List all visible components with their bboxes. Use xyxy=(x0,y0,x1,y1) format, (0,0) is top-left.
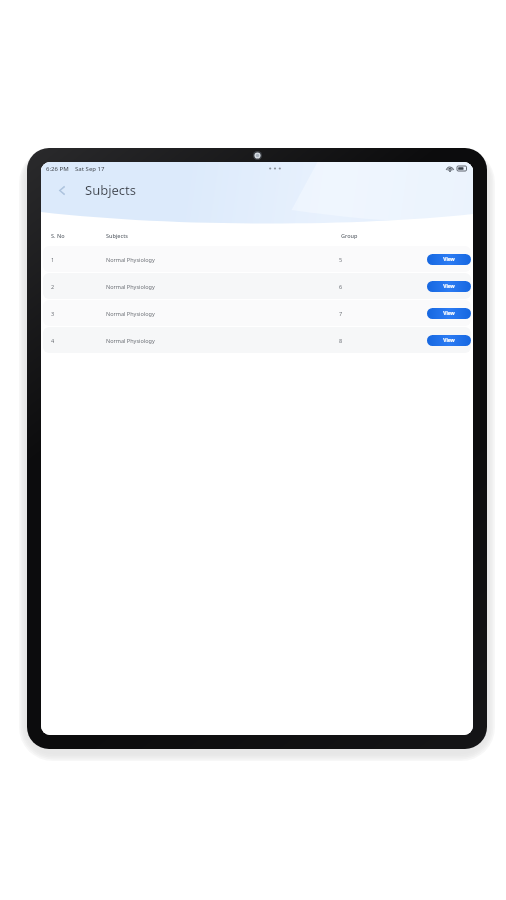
button[interactable]: View xyxy=(427,281,471,292)
staticText: Normal Physiology xyxy=(106,310,155,317)
staticText: S. No xyxy=(51,232,65,239)
button[interactable]: Back xyxy=(51,179,73,201)
staticText: 2 xyxy=(51,283,55,290)
staticText: View xyxy=(443,256,455,263)
button[interactable]: View xyxy=(427,335,471,346)
staticText: 5 xyxy=(339,256,343,263)
staticText: 6:26 PM xyxy=(46,165,69,173)
staticText: 6 xyxy=(339,283,343,290)
button[interactable]: 4 xyxy=(43,327,471,353)
button[interactable]: View xyxy=(427,254,471,265)
staticText: Subjects xyxy=(106,232,129,239)
staticText: 1 xyxy=(51,256,55,263)
staticText: 3 xyxy=(51,310,55,317)
staticText: 8 xyxy=(339,337,343,344)
button[interactable]: View xyxy=(427,308,471,319)
staticText: Normal Physiology xyxy=(106,283,155,290)
staticText: Subjects xyxy=(85,181,137,199)
staticText: View xyxy=(443,337,455,344)
staticText: Normal Physiology xyxy=(106,337,155,344)
staticText: View xyxy=(443,283,455,290)
staticText: Normal Physiology xyxy=(106,256,155,263)
staticText: View xyxy=(443,310,455,317)
button[interactable]: 3 xyxy=(43,300,471,326)
button[interactable]: 2 xyxy=(43,273,471,299)
staticText: 4 xyxy=(51,337,55,344)
staticText: Sat Sep 17 xyxy=(75,165,105,173)
staticText: Group xyxy=(341,232,358,239)
staticText: 7 xyxy=(339,310,343,317)
button[interactable]: 1 xyxy=(43,246,471,272)
